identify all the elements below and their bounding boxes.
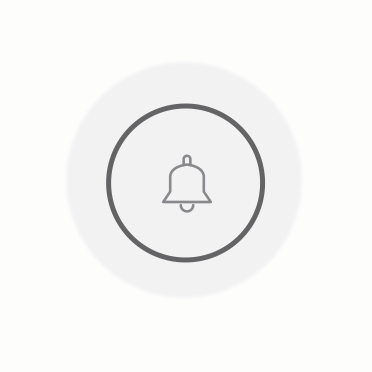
button[interactable]: Notifications	[69, 66, 303, 300]
